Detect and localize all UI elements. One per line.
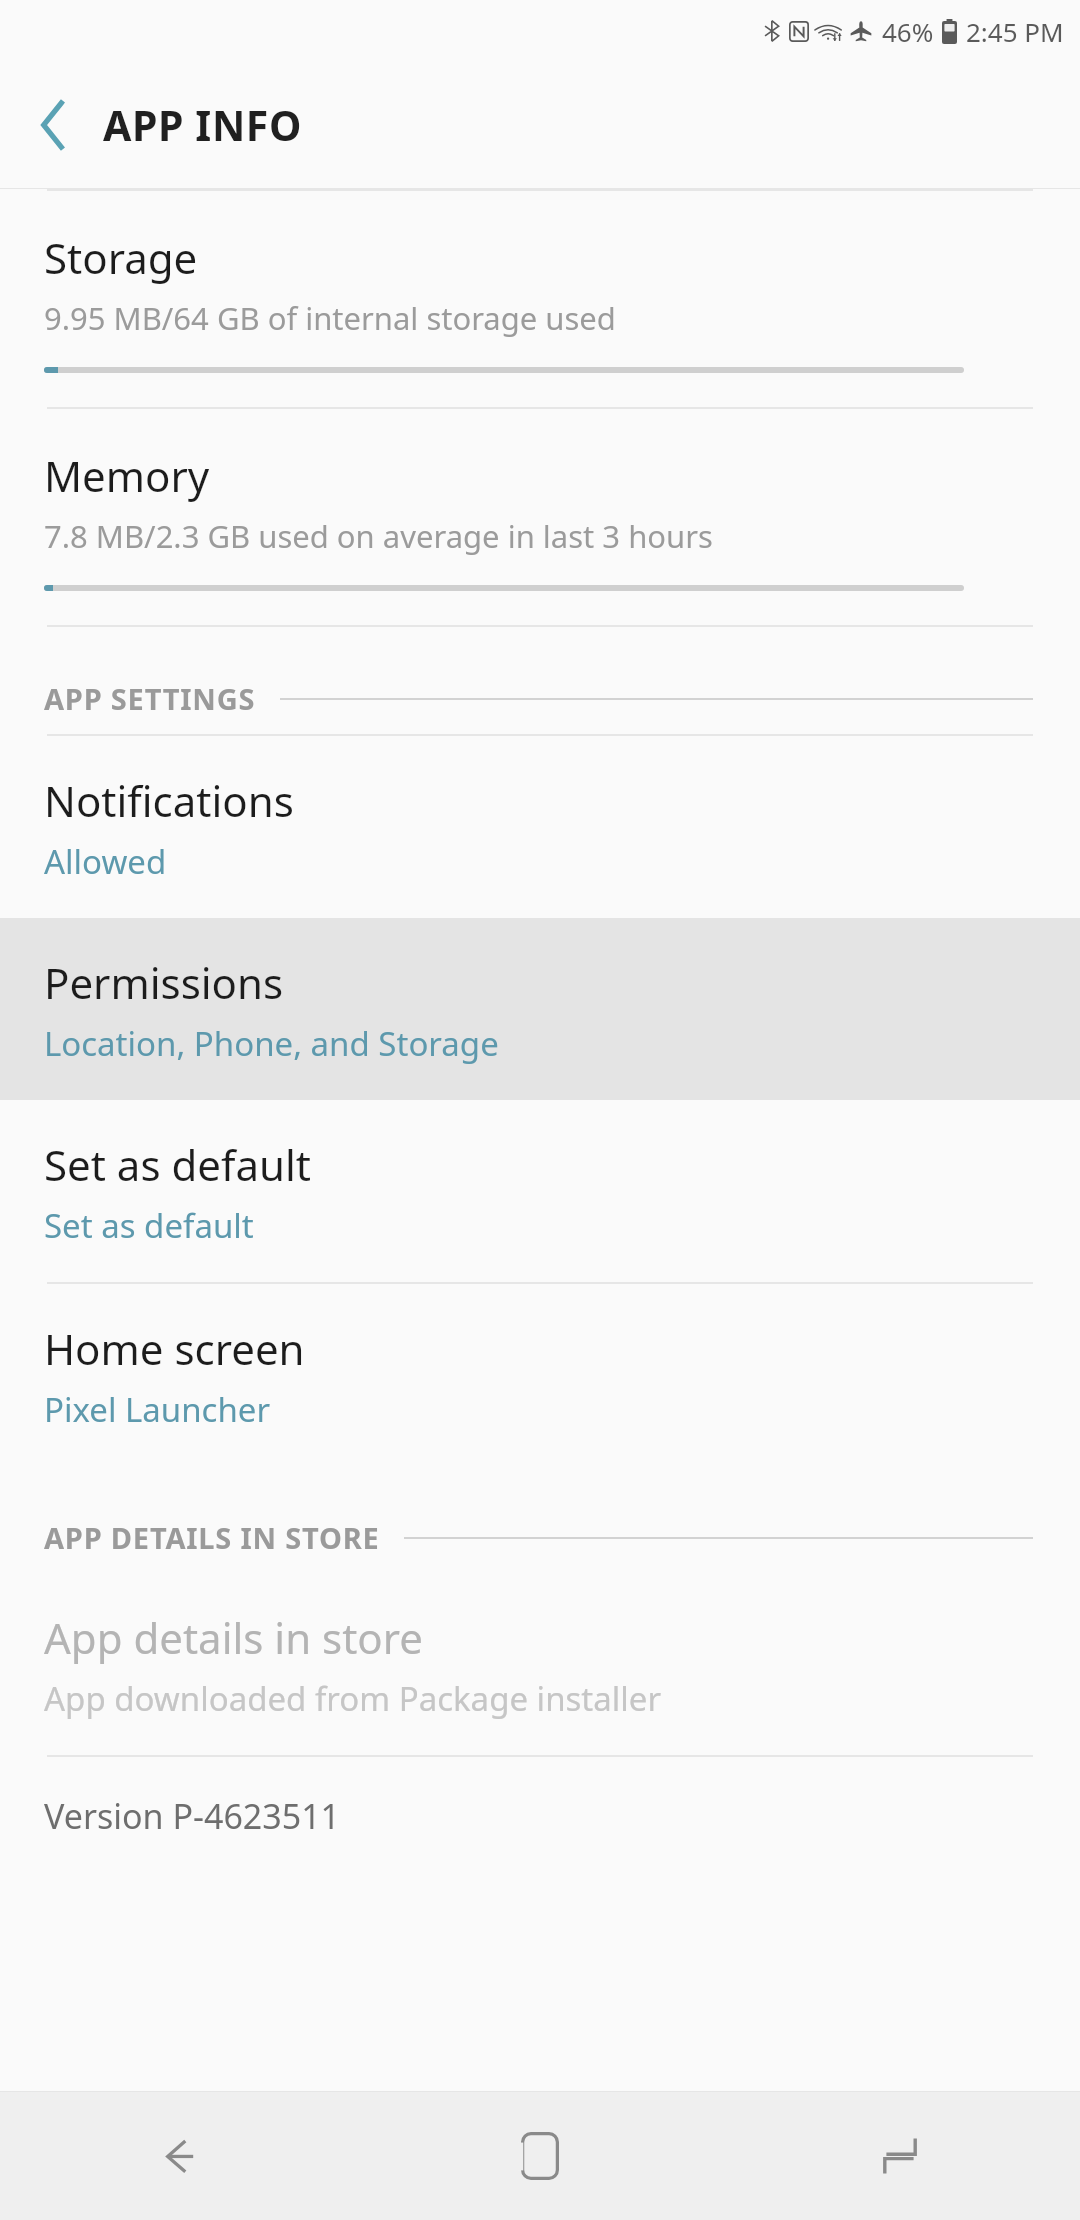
staticText: 9.95 MB/64 GB of internal storage used: [44, 297, 616, 339]
staticText: Memory: [44, 447, 210, 504]
button[interactable]: Recents: [720, 2092, 1080, 2220]
staticText: App details in store: [44, 1609, 423, 1666]
button[interactable]: Storage: [0, 191, 1080, 407]
staticText: Pixel Launcher: [44, 1387, 271, 1432]
button[interactable]: Home screen: [0, 1284, 1080, 1466]
staticText: Allowed: [44, 839, 167, 884]
staticText: 7.8 MB/2.3 GB used on average in last 3 …: [44, 515, 713, 557]
staticText: Storage: [44, 229, 198, 286]
staticText: App downloaded from Package installer: [44, 1676, 662, 1721]
staticText: Permissions: [44, 954, 284, 1011]
button[interactable]: Memory: [0, 409, 1080, 625]
staticText: APP SETTINGS: [44, 679, 256, 718]
staticText: Location, Phone, and Storage: [44, 1021, 499, 1066]
staticText: Set as default: [44, 1203, 254, 1248]
staticText: Notifications: [44, 772, 294, 829]
button[interactable]: App details in store: [0, 1573, 1080, 1755]
staticText: 2:45 PM: [966, 14, 1064, 49]
button[interactable]: Permissions: [0, 918, 1080, 1100]
staticText: Set as default: [44, 1136, 311, 1193]
button[interactable]: Notifications: [0, 736, 1080, 918]
button[interactable]: Home: [360, 2092, 720, 2220]
staticText: APP INFO: [103, 97, 302, 153]
staticText: 46%: [882, 14, 934, 49]
staticText: Home screen: [44, 1320, 305, 1377]
staticText: APP DETAILS IN STORE: [44, 1518, 380, 1557]
button[interactable]: Back: [0, 2092, 360, 2220]
button[interactable]: Back: [22, 94, 84, 156]
button[interactable]: Set as default: [0, 1100, 1080, 1282]
staticText: Version P-4623511: [44, 1793, 341, 1839]
